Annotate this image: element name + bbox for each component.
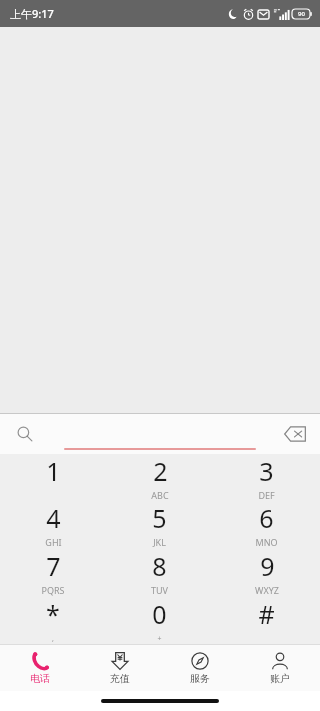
button[interactable]: 9: [213, 548, 320, 596]
staticText: GHI: [45, 536, 62, 548]
staticText: 4: [46, 501, 61, 535]
staticText: #: [258, 597, 275, 631]
staticText: 7: [46, 549, 61, 583]
button[interactable]: 6: [213, 501, 320, 548]
button[interactable]: 充值: [80, 645, 160, 691]
staticText: 3: [259, 454, 274, 488]
staticText: 8: [152, 549, 167, 583]
staticText: PQRS: [41, 584, 65, 596]
staticText: 0: [152, 597, 167, 631]
button[interactable]: 2: [106, 454, 213, 501]
staticText: 上午9:17: [10, 6, 54, 21]
button[interactable]: Search: [10, 419, 40, 449]
staticText: DEF: [258, 489, 275, 501]
button[interactable]: 8: [106, 548, 213, 596]
staticText: ABC: [151, 489, 169, 501]
button[interactable]: 0: [106, 596, 213, 644]
button[interactable]: Delete: [278, 417, 312, 451]
button[interactable]: 4: [0, 501, 106, 548]
button[interactable]: 7: [0, 548, 106, 596]
button[interactable]: 1: [0, 454, 106, 501]
button[interactable]: 3: [213, 454, 320, 501]
button[interactable]: *: [0, 596, 106, 644]
staticText: 5: [152, 501, 167, 535]
staticText: +: [157, 634, 162, 644]
staticText: 2: [153, 454, 168, 488]
button[interactable]: #: [213, 596, 320, 644]
button[interactable]: 账户: [240, 645, 320, 691]
staticText: 6: [259, 501, 274, 535]
staticText: MNO: [255, 536, 278, 548]
staticText: WXYZ: [255, 584, 279, 596]
staticText: 账户: [270, 672, 290, 685]
staticText: *: [46, 597, 60, 631]
staticText: 电话: [30, 672, 50, 685]
staticText: JKL: [153, 536, 166, 548]
staticText: 服务: [190, 672, 210, 685]
button[interactable]: 电话: [0, 645, 80, 691]
staticText: 90: [298, 10, 305, 18]
button[interactable]: 5: [106, 501, 213, 548]
staticText: ,: [52, 634, 54, 644]
staticText: 1: [46, 454, 61, 488]
staticText: TUV: [151, 584, 168, 596]
button[interactable]: 服务: [160, 645, 240, 691]
staticText: 充值: [110, 672, 130, 685]
staticText: 9: [260, 549, 275, 583]
